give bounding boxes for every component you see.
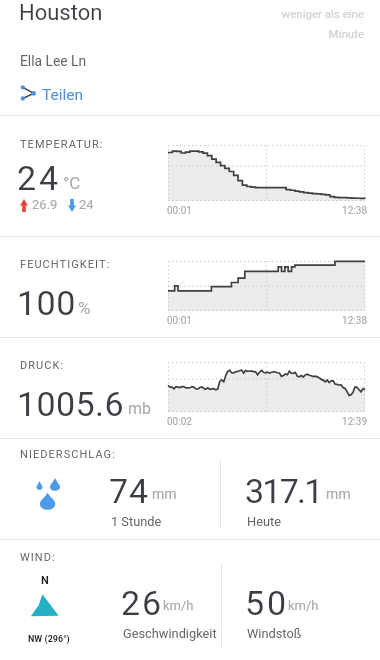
staticText: mm (152, 486, 177, 502)
staticText: 12:39 (168, 416, 367, 428)
staticText: km/h (288, 598, 319, 613)
staticText: Heute (247, 514, 281, 529)
staticText: 12:38 (168, 205, 367, 217)
staticText: 50 (245, 583, 290, 623)
staticText: 100 (17, 283, 76, 323)
staticText: km/h (163, 598, 194, 613)
staticText: WIND: (20, 551, 56, 564)
staticText: 26.9 (32, 197, 58, 212)
staticText: 26 (121, 583, 164, 623)
staticText: 317.1 (245, 471, 322, 511)
staticText: 24 (17, 158, 62, 198)
staticText: 24 (79, 197, 94, 212)
staticText: 00:02 (167, 416, 192, 428)
staticText: Houston (19, 0, 103, 26)
staticText: weniger als eine Minute (180, 7, 364, 41)
staticText: 00:01 (167, 205, 192, 217)
staticText: NIEDERSCHLAG: (20, 448, 116, 461)
other: Teilen (19, 84, 37, 102)
staticText: Geschwindigkeit (123, 626, 217, 641)
staticText: % (78, 298, 91, 318)
staticText: 12:38 (168, 315, 367, 327)
staticText: Ella Lee Ln (20, 53, 87, 69)
staticText: Windstoß (247, 626, 302, 641)
staticText: mm (326, 486, 351, 502)
staticText: TEMPERATUR: (20, 138, 104, 151)
staticText: DRUCK: (20, 359, 65, 372)
staticText: mb (128, 399, 152, 418)
staticText: °C (63, 173, 81, 193)
staticText: 1005.6 (17, 384, 124, 424)
staticText: 74 (109, 471, 150, 511)
staticText: Teilen (42, 86, 84, 104)
button[interactable]: Teilen (14, 82, 89, 104)
staticText: 00:01 (167, 315, 192, 327)
staticText: N (41, 574, 49, 587)
staticText: 1 Stunde (111, 514, 162, 529)
staticText: NW (296°) (28, 634, 70, 645)
staticText: FEUCHTIGKEIT: (20, 258, 111, 271)
